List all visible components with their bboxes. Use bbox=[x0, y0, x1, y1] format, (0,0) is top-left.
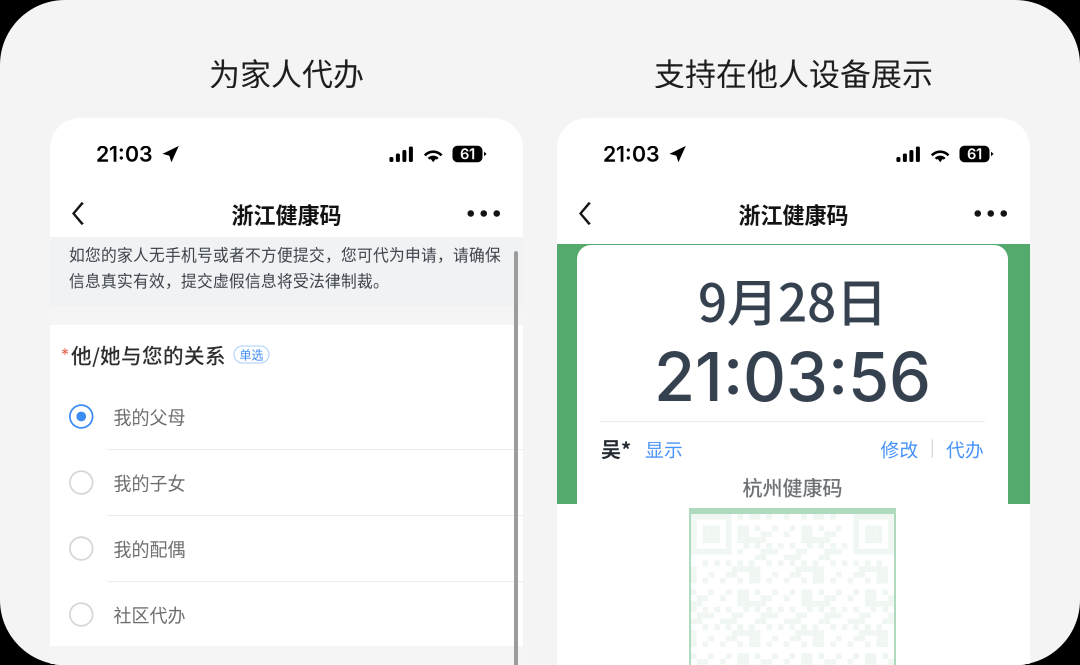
staticText: 我的配偶 bbox=[113, 535, 185, 562]
staticText: 杭州健康码 bbox=[742, 472, 842, 501]
staticText: 21:03:56 bbox=[654, 336, 931, 417]
staticText: 信息真实有效，提交虚假信息将受法律制裁。 bbox=[69, 269, 389, 291]
staticText: 他/她与您的关系 bbox=[71, 340, 226, 369]
button[interactable]: 我的子女 bbox=[50, 450, 523, 516]
staticText: 如您的家人无手机号或者不方便提交，您可代为申请，请确保 bbox=[69, 243, 501, 265]
button[interactable]: 显示 bbox=[645, 435, 683, 462]
staticText: 吴* bbox=[601, 434, 631, 463]
button[interactable]: Back bbox=[579, 189, 625, 237]
staticText: 代办 bbox=[946, 435, 984, 462]
staticText: 61 bbox=[460, 145, 475, 163]
staticText: 我的子女 bbox=[113, 469, 185, 496]
staticText: 21:03 bbox=[603, 141, 660, 167]
staticText: 为家人代办 bbox=[209, 50, 364, 94]
staticText: 社区代办 bbox=[113, 601, 185, 628]
button[interactable]: 社区代办 bbox=[50, 582, 523, 647]
button[interactable]: 我的配偶 bbox=[50, 516, 523, 582]
button[interactable]: 我的父母 bbox=[50, 384, 523, 450]
button[interactable]: 代办 bbox=[946, 435, 984, 462]
staticText: 浙江健康码 bbox=[738, 198, 848, 229]
staticText: 61 bbox=[967, 145, 982, 163]
button[interactable]: More options bbox=[454, 189, 500, 237]
staticText: 9月28日 bbox=[698, 262, 887, 336]
button[interactable]: More options bbox=[961, 189, 1007, 237]
staticText: 我的父母 bbox=[113, 403, 185, 430]
staticText: 浙江健康码 bbox=[231, 198, 341, 229]
staticText: 支持在他人设备展示 bbox=[654, 50, 933, 94]
staticText: 显示 bbox=[645, 435, 683, 462]
button[interactable]: Back bbox=[72, 189, 118, 237]
staticText: * bbox=[61, 345, 69, 364]
staticText: 修改 bbox=[881, 435, 919, 462]
staticText: 单选 bbox=[239, 346, 263, 363]
button[interactable]: 修改 bbox=[881, 435, 919, 462]
staticText: 21:03 bbox=[96, 141, 153, 167]
